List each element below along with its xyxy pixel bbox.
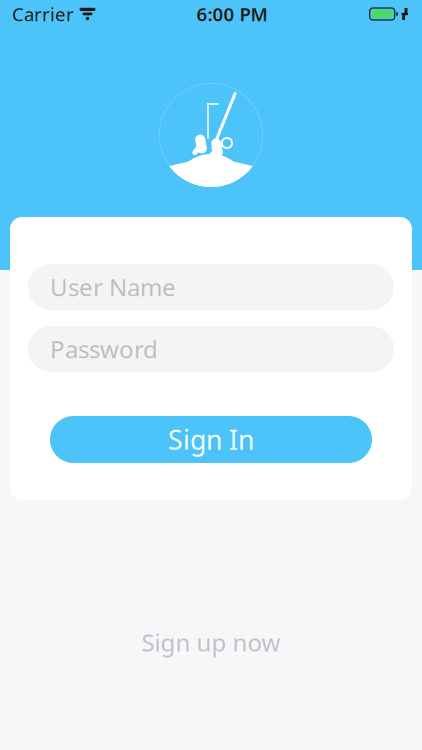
staticText: Sign up now — [141, 626, 280, 658]
staticText: Carrier — [12, 2, 74, 26]
button[interactable]: Sign In — [10, 416, 412, 463]
staticText: 6:00 PM — [196, 2, 267, 26]
staticText: Sign In — [168, 422, 254, 457]
staticText: Password — [50, 333, 158, 365]
staticText: User Name — [50, 271, 176, 303]
button[interactable]: Sign up now — [121, 616, 300, 668]
